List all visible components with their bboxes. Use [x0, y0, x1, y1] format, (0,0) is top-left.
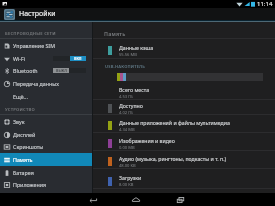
staticText: 0.00 MB	[119, 145, 135, 151]
button[interactable]: Wi-Fi	[0, 52, 92, 65]
staticText: 4.02 ГБ	[119, 110, 133, 115]
staticText: Дисплей	[13, 131, 36, 138]
staticText: Данные кэша	[119, 44, 154, 51]
button[interactable]: Скриншоты	[0, 140, 92, 153]
staticText: Звук	[13, 118, 25, 125]
staticText: 4.53 ГБ	[119, 94, 133, 100]
button[interactable]: Данные кэша	[93, 39, 275, 59]
button[interactable]: Батарея	[0, 166, 92, 179]
button[interactable]: Изображения и видео	[93, 133, 275, 151]
button[interactable]: Bluetooth	[0, 64, 92, 77]
button[interactable]: Back	[85, 193, 101, 206]
button[interactable]: Аудио (музыка, рингтоны, подкасты и т. п…	[93, 151, 275, 169]
button[interactable]: Память	[0, 153, 92, 166]
button[interactable]: Управление SIM	[0, 39, 92, 52]
button[interactable]: ВЫКЛ	[53, 68, 86, 73]
button[interactable]: Загрузки	[93, 170, 275, 189]
staticText: 11:14	[257, 0, 273, 8]
button[interactable]: ВКЛ	[53, 56, 86, 61]
staticText: Память	[104, 30, 126, 37]
staticText: 48.00 KB	[119, 163, 136, 169]
button[interactable]: Передача данных	[0, 77, 92, 90]
staticText: Wi-Fi	[13, 55, 26, 62]
staticText: USB-НАКОПИТЕЛЬ	[105, 64, 146, 70]
staticText: Батарея	[13, 169, 34, 176]
staticText: Память	[13, 156, 33, 163]
staticText: Аудио (музыка, рингтоны, подкасты и т. п…	[119, 155, 227, 162]
button[interactable]: Recent apps	[172, 193, 188, 206]
staticText: Передача данных	[13, 80, 59, 87]
staticText: Приложения	[13, 181, 46, 188]
button[interactable]: Доступно	[93, 99, 275, 115]
button[interactable]: Всего места	[93, 82, 275, 100]
staticText: Всего места	[119, 86, 150, 93]
staticText: БЕСПРОВОДНЫЕ СЕТИ	[5, 31, 56, 37]
staticText: Доступно	[119, 102, 143, 109]
staticText: 55.56 MB	[119, 52, 137, 58]
button[interactable]: Звук	[0, 115, 92, 128]
staticText: Изображения и видео	[119, 137, 175, 144]
staticText: Данные приложений и файлы мультимедиа	[119, 119, 230, 126]
staticText: Bluetooth	[13, 67, 38, 74]
staticText: Скриншоты	[13, 143, 44, 150]
staticText: 8.00 KB	[119, 182, 134, 188]
button[interactable]: Home	[128, 193, 144, 206]
staticText: Управление SIM	[13, 42, 55, 49]
button[interactable]: Приложения	[0, 178, 92, 191]
staticText: Настройки	[19, 9, 56, 19]
button[interactable]: Ещё...	[0, 90, 92, 103]
staticText: ВКЛ	[74, 56, 82, 61]
staticText: УСТРОЙСТВО	[5, 107, 35, 113]
staticText: Загрузки	[119, 174, 142, 181]
staticText: ВЫКЛ	[56, 68, 67, 73]
staticText: Ещё...	[13, 93, 28, 100]
button[interactable]: Дисплей	[0, 128, 92, 141]
button[interactable]: Данные приложений и файлы мультимедиа	[93, 115, 275, 133]
staticText: 4.34 MB	[119, 127, 135, 133]
